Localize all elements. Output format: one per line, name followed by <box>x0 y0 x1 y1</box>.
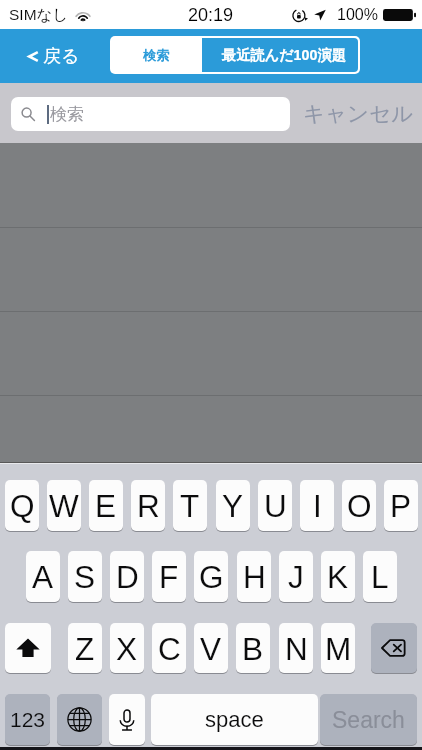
staticText: 100% <box>337 6 378 24</box>
button[interactable]: Next keyboard <box>57 694 102 745</box>
staticText: Search <box>332 707 405 733</box>
staticText: W <box>49 488 79 523</box>
button[interactable]: N <box>279 623 313 673</box>
button[interactable]: 検索 <box>110 36 202 74</box>
staticText: K <box>327 559 349 594</box>
staticText: 検索 <box>50 104 84 125</box>
staticText: O <box>347 488 372 523</box>
staticText: 20:19 <box>188 5 234 25</box>
staticText: space <box>205 707 264 732</box>
button[interactable]: 最近読んだ100演題 <box>202 38 358 72</box>
button[interactable]: M <box>321 623 355 673</box>
button[interactable]: D <box>110 551 144 602</box>
button[interactable]: U <box>258 480 292 531</box>
staticText: 最近読んだ100演題 <box>222 46 346 64</box>
button[interactable]: O <box>342 480 376 531</box>
staticText: Q <box>10 488 35 523</box>
staticText: D <box>116 559 139 594</box>
button[interactable]: Q <box>5 480 39 531</box>
staticText: 戻る <box>43 45 80 68</box>
staticText: U <box>264 488 287 523</box>
staticText: Y <box>222 488 244 523</box>
button[interactable]: 123 <box>5 694 50 745</box>
button[interactable]: X <box>110 623 144 673</box>
button[interactable]: Dictation <box>109 694 145 745</box>
staticText: C <box>158 631 181 666</box>
button[interactable]: J <box>279 551 313 602</box>
button[interactable]: I <box>300 480 334 531</box>
button[interactable]: Backspace <box>371 623 417 673</box>
button[interactable]: E <box>89 480 123 531</box>
staticText: E <box>95 488 117 523</box>
staticText: T <box>180 488 200 523</box>
staticText: L <box>371 559 389 594</box>
staticText: SIMなし <box>9 5 69 25</box>
staticText: I <box>313 488 322 523</box>
button[interactable]: 検索 <box>11 97 290 131</box>
button[interactable]: キャンセル <box>295 90 422 137</box>
staticText: X <box>116 631 138 666</box>
button[interactable]: R <box>131 480 165 531</box>
staticText: F <box>159 559 179 594</box>
staticText: J <box>288 559 304 594</box>
button[interactable]: Y <box>216 480 250 531</box>
staticText: B <box>242 631 264 666</box>
button[interactable]: C <box>152 623 186 673</box>
staticText: V <box>200 631 222 666</box>
button[interactable]: F <box>152 551 186 602</box>
button[interactable]: L <box>363 551 397 602</box>
button[interactable]: Z <box>68 623 102 673</box>
button[interactable]: T <box>173 480 207 531</box>
button[interactable]: Search <box>320 694 417 745</box>
button[interactable]: H <box>237 551 271 602</box>
staticText: R <box>137 488 160 523</box>
button[interactable]: K <box>321 551 355 602</box>
button[interactable]: S <box>68 551 102 602</box>
staticText: キャンセル <box>303 100 414 127</box>
staticText: N <box>285 631 308 666</box>
button[interactable]: space <box>151 694 318 745</box>
button[interactable]: P <box>384 480 418 531</box>
button[interactable]: W <box>47 480 81 531</box>
staticText: H <box>243 559 266 594</box>
button[interactable]: Shift <box>5 623 51 673</box>
button[interactable]: G <box>194 551 228 602</box>
staticText: G <box>199 559 224 594</box>
button[interactable]: A <box>26 551 60 602</box>
button[interactable]: 戻る <box>0 39 94 74</box>
staticText: S <box>74 559 96 594</box>
staticText: 検索 <box>143 47 169 63</box>
staticText: Z <box>75 631 95 666</box>
staticText: M <box>325 631 352 666</box>
staticText: P <box>390 488 412 523</box>
button[interactable]: V <box>194 623 228 673</box>
staticText: A <box>32 559 54 594</box>
button[interactable]: B <box>236 623 270 673</box>
staticText: 123 <box>10 708 46 731</box>
